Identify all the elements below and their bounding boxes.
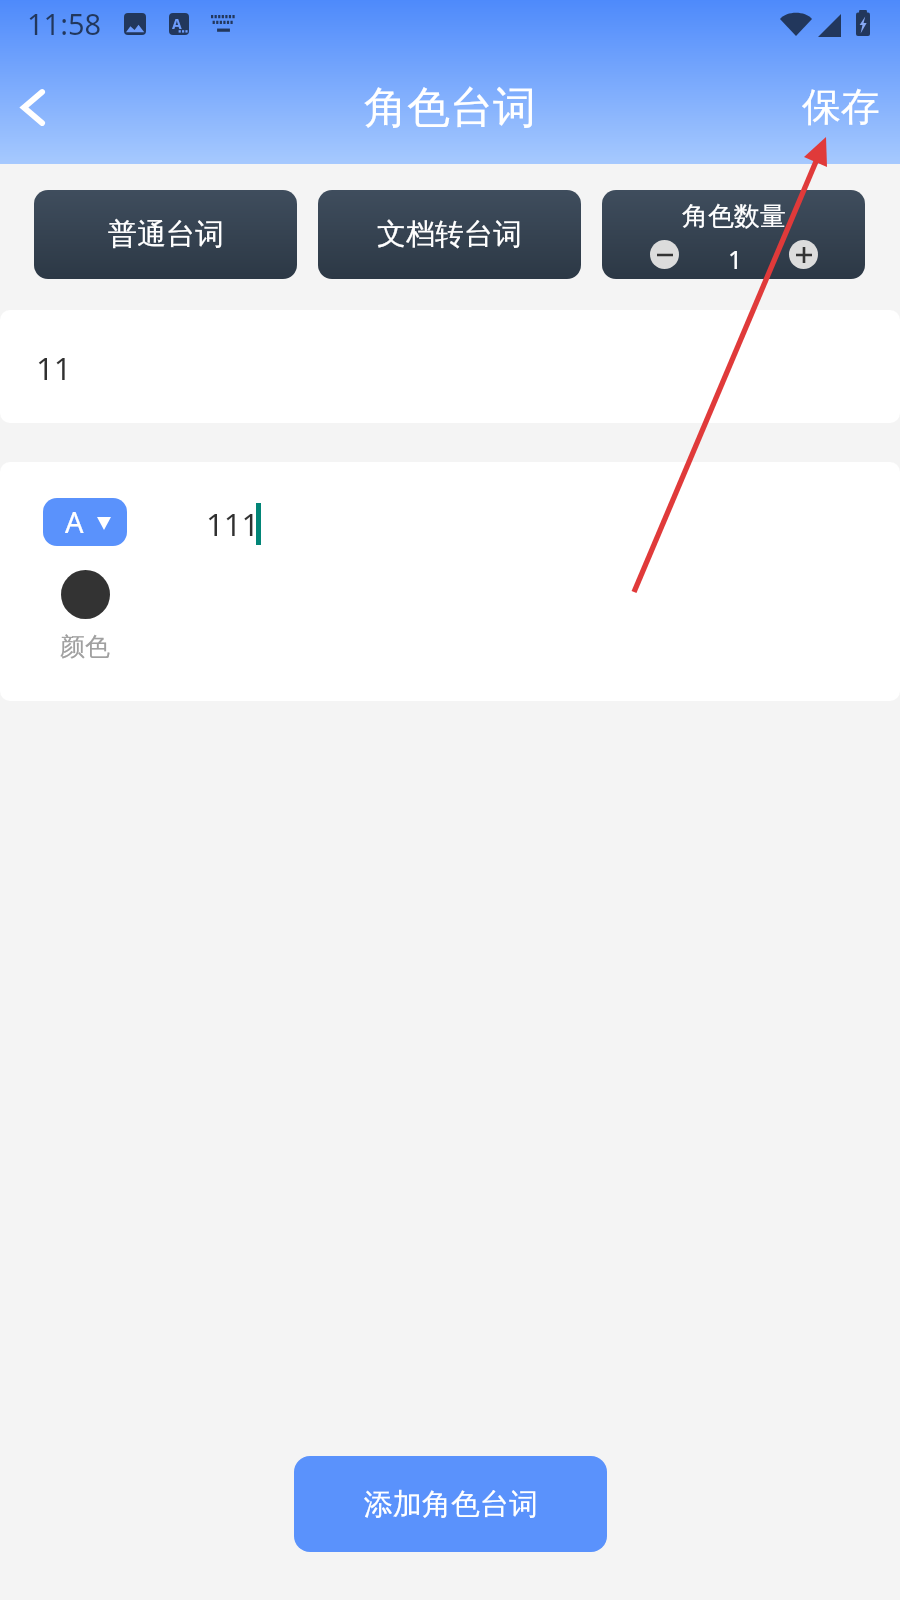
button[interactable]: 普通台词 xyxy=(34,190,297,279)
staticText: A xyxy=(172,14,182,33)
staticText: 1 xyxy=(728,242,743,276)
button[interactable]: 文档转台词 xyxy=(318,190,581,279)
staticText: 文档转台词 xyxy=(377,216,522,253)
staticText: A xyxy=(65,502,84,541)
button[interactable]: 角色数量 xyxy=(602,190,865,279)
button[interactable]: 111 xyxy=(186,486,876,556)
staticText: 添加角色台词 xyxy=(364,1486,538,1523)
staticText: 角色数量 xyxy=(682,200,786,233)
button[interactable]: Increase count xyxy=(789,240,818,269)
button[interactable]: 保存 xyxy=(802,82,880,131)
staticText: 11:58 xyxy=(27,4,102,43)
button[interactable]: A xyxy=(43,498,127,546)
button[interactable]: Back xyxy=(8,82,58,132)
staticText: 角色台词 xyxy=(364,81,536,135)
button[interactable]: Decrease count xyxy=(650,240,679,269)
staticText: 颜色 xyxy=(60,631,110,662)
staticText: 普通台词 xyxy=(108,216,224,253)
button[interactable]: Pick colour xyxy=(61,570,110,619)
button[interactable]: 11 xyxy=(0,310,900,423)
staticText: 保存 xyxy=(802,82,880,131)
staticText: 11 xyxy=(36,347,72,389)
button[interactable]: 添加角色台词 xyxy=(294,1456,607,1552)
staticText: 111 xyxy=(206,503,260,545)
